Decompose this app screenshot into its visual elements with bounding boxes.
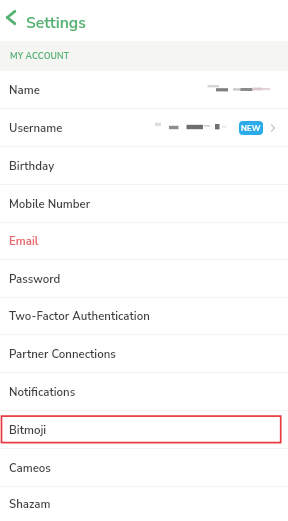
button[interactable]: Bitmoji — [0, 411, 288, 448]
button[interactable]: Back — [3, 9, 23, 33]
button[interactable]: Email — [0, 223, 288, 259]
button[interactable]: Mobile Number — [0, 185, 288, 222]
staticText: Partner Connections — [9, 346, 116, 362]
button[interactable]: Name — [0, 71, 288, 108]
staticText: Shazam — [9, 496, 51, 512]
button[interactable]: Password — [0, 260, 288, 297]
staticText: Email — [9, 233, 39, 249]
button[interactable]: Notifications — [0, 373, 288, 410]
staticText: Settings — [26, 11, 86, 33]
button[interactable]: Cameos — [0, 449, 288, 486]
staticText: NEW — [241, 123, 261, 134]
staticText: Two-Factor Authentication — [9, 308, 150, 324]
button[interactable]: Two-Factor Authentication — [0, 298, 288, 334]
staticText: Bitmoji — [9, 422, 47, 438]
staticText: MY ACCOUNT — [10, 50, 70, 62]
button[interactable]: NEW — [239, 121, 263, 135]
staticText: Password — [9, 271, 61, 287]
staticText: Birthday — [9, 158, 55, 174]
button[interactable]: Birthday — [0, 147, 288, 184]
staticText: Username — [9, 120, 63, 136]
staticText: Cameos — [9, 460, 51, 476]
button[interactable]: Username — [0, 109, 288, 146]
staticText: Notifications — [9, 384, 76, 400]
button[interactable]: Shazam — [0, 487, 288, 521]
staticText: Name — [9, 82, 40, 98]
button[interactable]: Partner Connections — [0, 335, 288, 372]
staticText: Mobile Number — [9, 196, 91, 212]
